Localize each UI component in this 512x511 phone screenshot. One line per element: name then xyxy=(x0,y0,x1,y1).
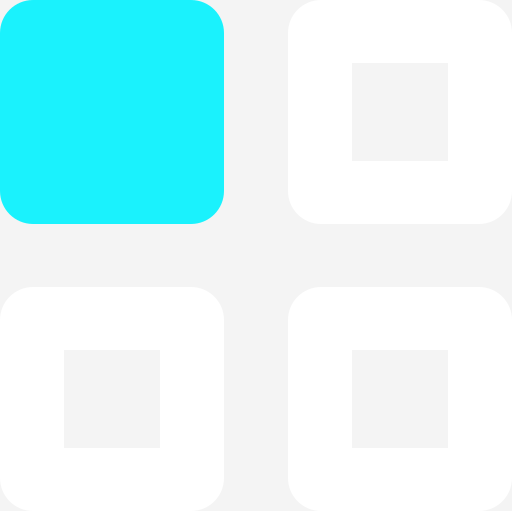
button[interactable]: All apps xyxy=(0,0,224,224)
button[interactable]: Recents xyxy=(288,0,512,224)
button[interactable]: Favourites xyxy=(0,287,224,511)
button[interactable]: Settings xyxy=(288,287,512,511)
